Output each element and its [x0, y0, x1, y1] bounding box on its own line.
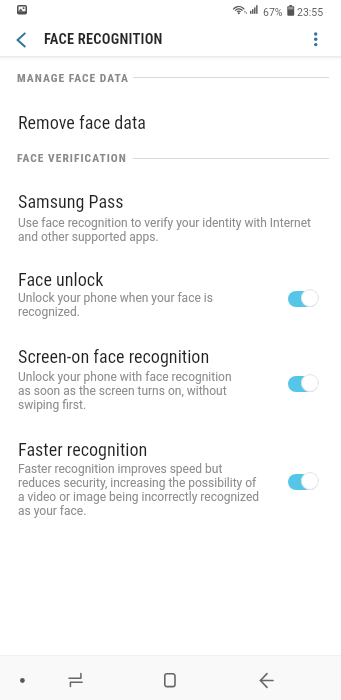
staticText: Remove face data — [18, 112, 146, 133]
button[interactable] — [288, 472, 320, 492]
staticText: 23:55 — [297, 6, 324, 18]
staticText: MANAGE FACE DATA — [17, 71, 129, 84]
button[interactable] — [302, 24, 332, 54]
staticText: Use face recognition to verify your iden… — [18, 216, 311, 244]
button[interactable] — [149, 660, 191, 700]
button[interactable] — [245, 660, 287, 700]
staticText: Unlock your phone with face recognition … — [18, 370, 232, 412]
button[interactable]: Face unlock — [0, 258, 341, 326]
button[interactable] — [0, 24, 42, 54]
staticText: Samsung Pass — [18, 191, 124, 212]
staticText: Face unlock — [18, 269, 104, 290]
button[interactable]: Screen-on face recognition — [0, 336, 341, 418]
button[interactable] — [55, 660, 97, 700]
staticText: Faster recognition improves speed but re… — [18, 462, 260, 518]
button[interactable] — [288, 289, 320, 309]
staticText: FACE RECOGNITION — [44, 31, 163, 48]
button[interactable]: Remove face data — [0, 97, 341, 141]
staticText: Screen-on face recognition — [18, 346, 210, 367]
button[interactable] — [288, 374, 320, 394]
staticText: Faster recognition — [18, 439, 148, 460]
button[interactable]: Faster recognition — [0, 429, 341, 525]
staticText: 67% — [263, 6, 283, 18]
staticText: Unlock your phone when your face is reco… — [18, 291, 213, 319]
button[interactable]: Samsung Pass — [0, 180, 341, 252]
staticText: FACE VERIFICATION — [17, 151, 127, 164]
